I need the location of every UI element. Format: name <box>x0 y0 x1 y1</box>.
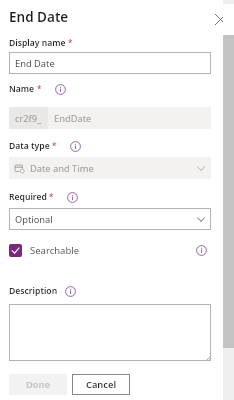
button[interactable]: End Date <box>9 52 211 74</box>
staticText: EndDate <box>54 112 92 125</box>
button[interactable]: Date and Time <box>9 157 211 179</box>
staticText: Searchable <box>30 244 80 257</box>
staticText: Display name <box>9 37 66 49</box>
staticText: Required <box>9 191 47 203</box>
staticText: Optional <box>15 213 53 226</box>
button[interactable]: Optional <box>9 208 211 230</box>
staticText: End Date <box>9 8 69 26</box>
button[interactable]: More info <box>67 192 78 203</box>
button[interactable]: Done <box>9 374 67 395</box>
button[interactable]: Cancel <box>72 374 130 395</box>
staticText: Date and Time <box>30 162 94 175</box>
staticText: * <box>37 83 41 94</box>
staticText: cr2f9_ <box>15 112 42 125</box>
staticText: Description <box>9 285 58 297</box>
staticText: * <box>49 191 53 202</box>
staticText: Done <box>26 378 50 391</box>
staticText: * <box>68 37 72 48</box>
button[interactable]: More info <box>70 141 81 152</box>
button[interactable]: More info <box>65 286 76 297</box>
button[interactable]: More info <box>196 245 207 256</box>
button[interactable] <box>9 304 211 361</box>
button[interactable]: Close <box>208 7 232 31</box>
button[interactable]: cr2f9_ <box>9 107 211 129</box>
staticText: * <box>52 140 56 151</box>
staticText: Name <box>9 83 35 95</box>
staticText: Data type <box>9 140 50 152</box>
button[interactable]: Searchable <box>9 244 80 257</box>
staticText: Cancel <box>86 378 117 391</box>
button[interactable]: More info <box>55 84 66 95</box>
staticText: End Date <box>15 57 55 70</box>
